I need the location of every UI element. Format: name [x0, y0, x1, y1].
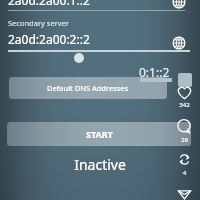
- staticText: Secondary server: [8, 18, 69, 28]
- button[interactable]: Pick server: [172, 0, 186, 9]
- staticText: 0:1::2: [139, 64, 170, 80]
- staticText: START: [86, 128, 113, 140]
- staticText: 2a0d:2a00:1::2: [8, 0, 90, 8]
- button[interactable]: Share: [176, 185, 193, 200]
- button[interactable]: Like: [176, 84, 193, 101]
- button[interactable]: Comment: [176, 118, 193, 135]
- button[interactable]: Profile: [178, 73, 192, 87]
- button[interactable]: Pick server: [172, 36, 186, 50]
- staticText: 29: [176, 136, 193, 144]
- button[interactable]: Default DNS Addresses: [9, 77, 167, 99]
- staticText: 2a0d:2a00:2::2: [8, 31, 90, 47]
- staticText: Default DNS Addresses: [47, 83, 129, 93]
- staticText: 4: [176, 169, 193, 177]
- staticText: 342: [176, 101, 193, 109]
- button[interactable]: Repost: [176, 151, 193, 168]
- staticText: Inactive: [0, 155, 200, 174]
- button[interactable]: START: [7, 122, 191, 146]
